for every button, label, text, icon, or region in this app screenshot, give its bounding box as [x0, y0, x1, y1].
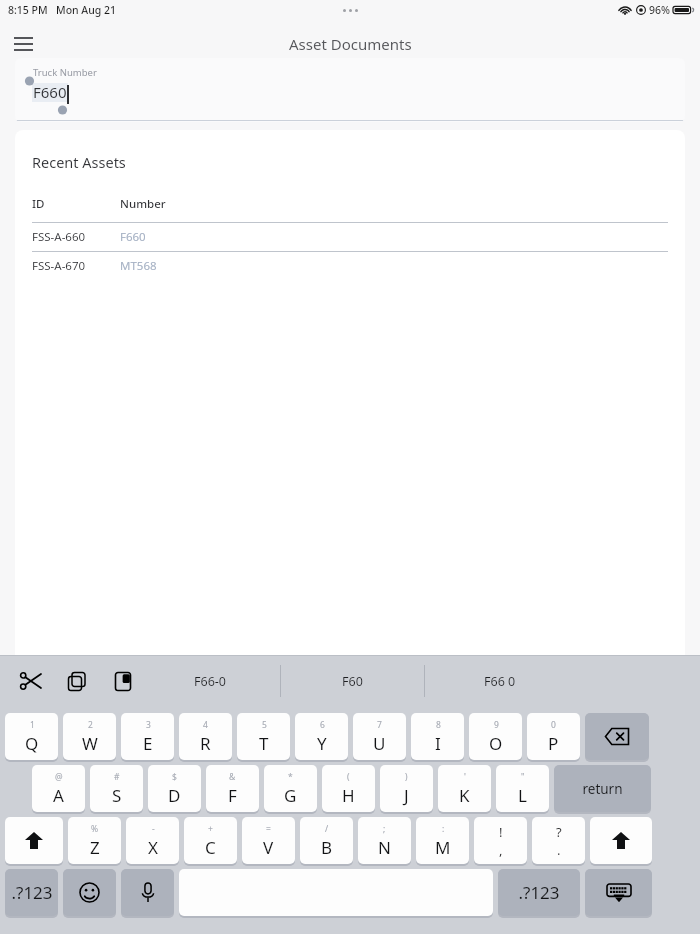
- staticText: 4: [203, 719, 208, 731]
- staticText: 96%: [649, 3, 670, 17]
- staticText: I: [435, 732, 441, 755]
- staticText: Q: [25, 732, 39, 755]
- staticText: FSS-A-660: [32, 229, 120, 245]
- button[interactable]: 9: [469, 713, 522, 761]
- button[interactable]: *: [264, 765, 317, 813]
- button[interactable]: F66-0: [140, 656, 280, 706]
- button[interactable]: -: [126, 817, 179, 865]
- staticText: Asset Documents: [289, 34, 412, 54]
- button[interactable]: !: [474, 817, 527, 865]
- button[interactable]: ;: [358, 817, 411, 865]
- staticText: Truck Number: [33, 66, 97, 79]
- button[interactable]: [5, 817, 63, 865]
- button[interactable]: =: [242, 817, 295, 865]
- button[interactable]: return: [554, 765, 651, 813]
- staticText: Z: [90, 836, 100, 859]
- button[interactable]: ): [380, 765, 433, 813]
- button[interactable]: 7: [353, 713, 406, 761]
- button[interactable]: ': [438, 765, 491, 813]
- staticText: Number: [120, 196, 166, 212]
- button[interactable]: +: [184, 817, 237, 865]
- staticText: /: [325, 823, 329, 835]
- button[interactable]: FSS-A-660: [32, 223, 668, 251]
- staticText: 6: [320, 719, 325, 731]
- button[interactable]: 3: [121, 713, 174, 761]
- staticText: J: [404, 784, 409, 807]
- staticText: F: [228, 784, 237, 807]
- staticText: Mon Aug 21: [56, 3, 117, 17]
- staticText: 0: [551, 719, 556, 731]
- staticText: 9: [494, 719, 499, 731]
- button[interactable]: FSS-A-670: [32, 252, 668, 280]
- button[interactable]: Menu: [8, 29, 38, 59]
- staticText: 7: [377, 719, 382, 731]
- button[interactable]: Paste: [110, 668, 136, 694]
- button[interactable]: 8: [411, 713, 464, 761]
- button[interactable]: (: [322, 765, 375, 813]
- staticText: F660: [120, 229, 146, 245]
- staticText: ID: [32, 196, 120, 212]
- button[interactable]: [179, 869, 493, 917]
- staticText: N: [378, 836, 391, 859]
- button[interactable]: 5: [237, 713, 290, 761]
- button[interactable]: 0: [527, 713, 580, 761]
- staticText: .?123: [11, 881, 53, 904]
- button[interactable]: Truck Number: [15, 58, 685, 122]
- button[interactable]: #: [90, 765, 143, 813]
- button[interactable]: .?123: [498, 869, 580, 917]
- staticText: E: [143, 732, 153, 755]
- button[interactable]: [590, 817, 652, 865]
- staticText: ;: [383, 823, 386, 835]
- button[interactable]: $: [148, 765, 201, 813]
- staticText: P: [548, 732, 559, 755]
- staticText: .?123: [518, 881, 560, 904]
- staticText: *: [288, 771, 293, 783]
- staticText: D: [168, 784, 181, 807]
- staticText: FSS-A-670: [32, 258, 120, 274]
- staticText: V: [263, 836, 274, 859]
- staticText: H: [342, 784, 355, 807]
- staticText: C: [205, 836, 216, 859]
- staticText: F66-0: [194, 673, 226, 690]
- staticText: +: [208, 823, 213, 835]
- button[interactable]: Cut: [18, 668, 44, 694]
- button[interactable]: &: [206, 765, 259, 813]
- staticText: =: [266, 823, 271, 835]
- button[interactable]: Hide keyboard: [585, 869, 652, 917]
- staticText: #: [114, 771, 120, 783]
- button[interactable]: .?123: [5, 869, 58, 917]
- button[interactable]: Dictation: [121, 869, 174, 917]
- staticText: F60: [342, 673, 363, 690]
- button[interactable]: %: [68, 817, 121, 865]
- button[interactable]: /: [300, 817, 353, 865]
- staticText: X: [148, 836, 158, 859]
- staticText: MT568: [120, 258, 157, 274]
- staticText: 5: [262, 719, 267, 731]
- button[interactable]: @: [32, 765, 85, 813]
- button[interactable]: F66 0: [425, 656, 575, 706]
- staticText: .: [557, 841, 561, 859]
- staticText: (: [347, 771, 350, 783]
- staticText: !: [499, 823, 503, 841]
- staticText: Recent Assets: [32, 152, 126, 172]
- staticText: @: [55, 771, 63, 783]
- button[interactable]: F60: [281, 656, 424, 706]
- button[interactable]: 4: [179, 713, 232, 761]
- button[interactable]: 2: [63, 713, 116, 761]
- button[interactable]: 6: [295, 713, 348, 761]
- button[interactable]: ?: [532, 817, 585, 865]
- staticText: 8:15 PM: [8, 3, 48, 17]
- staticText: Y: [317, 732, 327, 755]
- button[interactable]: Emoji: [63, 869, 116, 917]
- button[interactable]: ": [496, 765, 549, 813]
- staticText: A: [53, 784, 64, 807]
- button[interactable]: 1: [5, 713, 58, 761]
- button[interactable]: :: [416, 817, 469, 865]
- staticText: 3: [146, 719, 151, 731]
- button[interactable]: [585, 713, 649, 761]
- staticText: ": [521, 771, 525, 783]
- staticText: return: [582, 780, 623, 798]
- button[interactable]: Copy: [64, 668, 90, 694]
- staticText: ,: [499, 841, 503, 859]
- staticText: ): [405, 771, 408, 783]
